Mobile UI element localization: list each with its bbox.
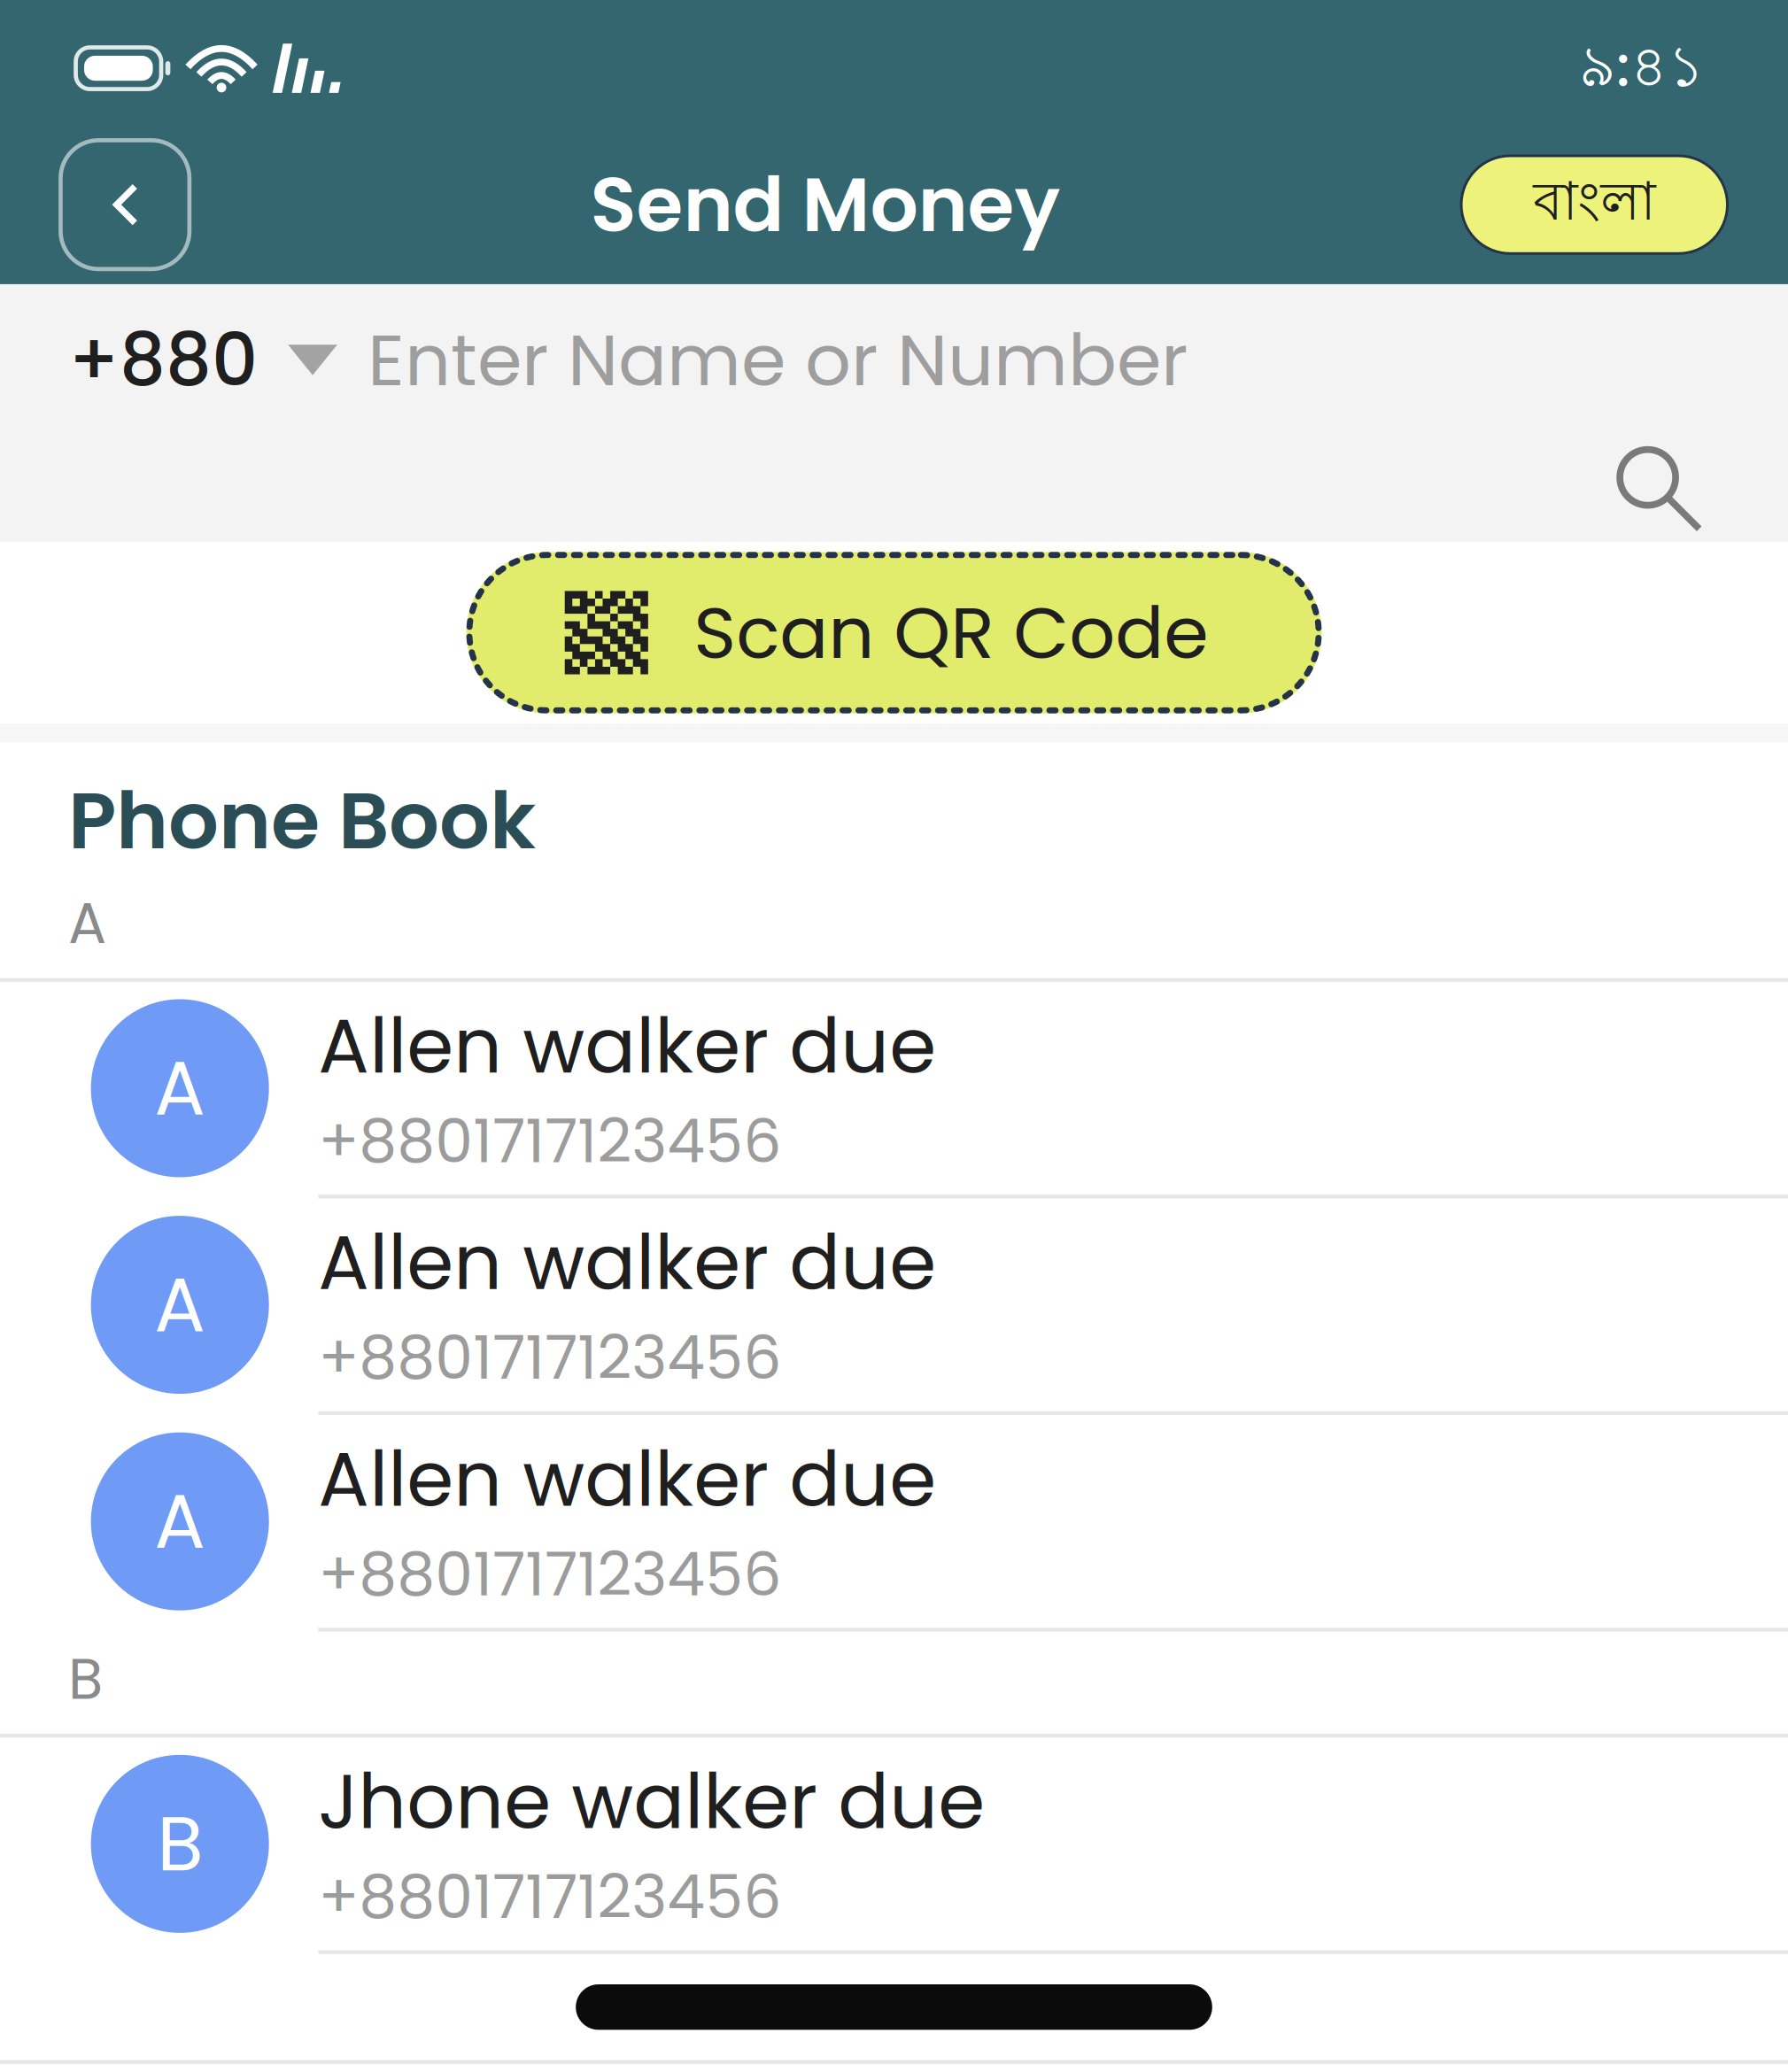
staticText: Scan QR Code <box>694 582 1208 683</box>
staticText: Allen walker due <box>318 1210 936 1316</box>
staticText: Allen walker due <box>318 993 936 1099</box>
staticText: +8801717123456 <box>318 1316 781 1400</box>
button[interactable]: A <box>0 982 1788 1198</box>
staticText: Enter Name or Number <box>368 310 1188 410</box>
button[interactable]: +880 <box>68 310 368 410</box>
staticText: +8801717123456 <box>318 1099 781 1183</box>
button[interactable]: A <box>0 1198 1788 1415</box>
staticText: ৯:৪১ <box>1579 26 1705 110</box>
button[interactable]: বাংলা <box>1461 156 1727 254</box>
staticText: A <box>154 1252 206 1358</box>
staticText: +880 <box>68 310 258 410</box>
staticText: B <box>157 1791 203 1897</box>
staticText: Allen walker due <box>318 1426 936 1532</box>
button[interactable]: B <box>0 1737 1788 1954</box>
staticText: A <box>154 1469 206 1574</box>
staticText: Jhone walker due <box>318 1749 985 1855</box>
staticText: +8801717123456 <box>318 1532 781 1616</box>
button[interactable]: Search <box>1595 426 1720 551</box>
staticText: বাংলা <box>1533 167 1655 242</box>
staticText: B <box>68 1639 103 1719</box>
staticText: Phone Book <box>68 765 536 876</box>
staticText: A <box>154 1035 206 1141</box>
button[interactable]: Scan QR Code <box>466 552 1322 713</box>
staticText: Send Money <box>590 152 1060 258</box>
button[interactable]: Back <box>61 140 189 269</box>
button[interactable]: A <box>0 1415 1788 1632</box>
staticText: A <box>68 884 106 963</box>
staticText: +8801717123456 <box>318 1855 781 1939</box>
button[interactable]: Enter Name or Number <box>368 284 1720 436</box>
